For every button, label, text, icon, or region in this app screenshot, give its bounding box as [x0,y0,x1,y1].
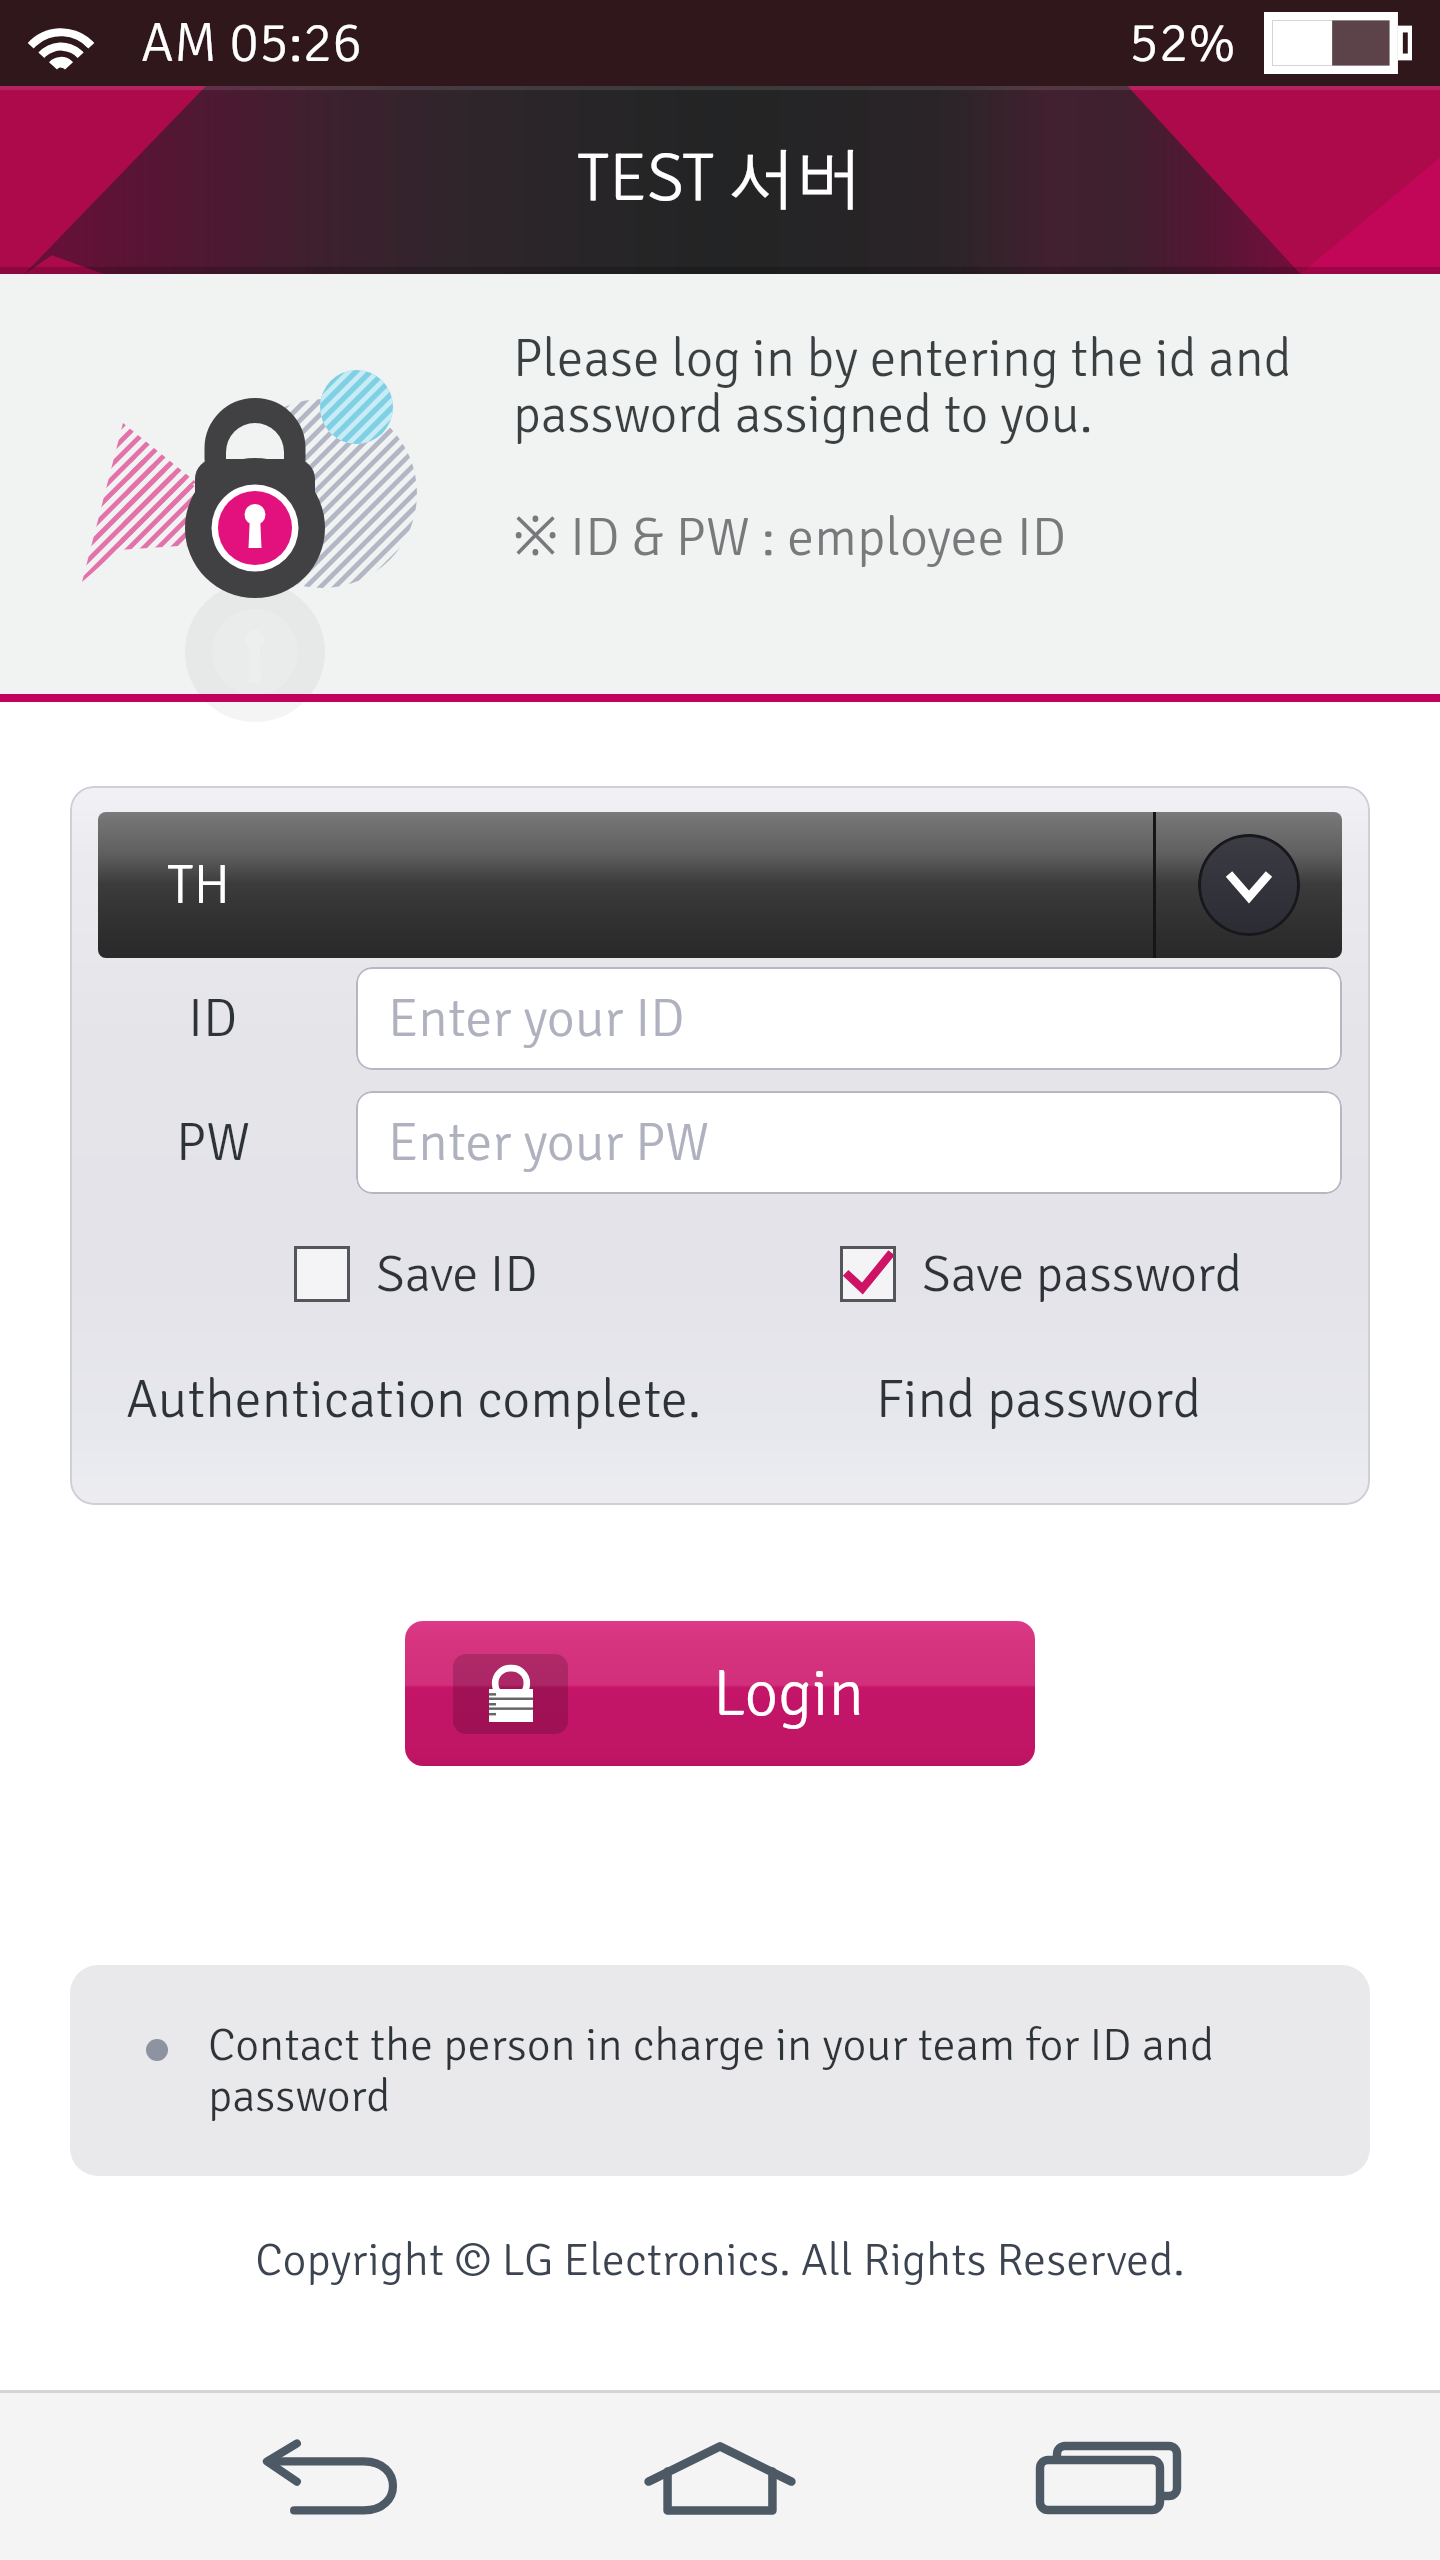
staticText: Login [713,1654,864,1734]
button[interactable]: Login [405,1621,1035,1766]
staticText: TH [167,851,231,919]
staticText: Enter your ID [388,985,685,1052]
button[interactable]: Find password [876,1366,1202,1433]
staticText: ※ ID & PW : employee ID [513,497,1067,571]
button[interactable]: Enter your ID [356,967,1342,1070]
staticText: Copyright © LG Electronics. All Rights R… [0,2232,1440,2289]
button[interactable]: Enter your PW [356,1091,1342,1194]
staticText: PW [176,1109,250,1176]
button[interactable]: Back [0,2393,480,2560]
staticText: Contact the person in charge in your tea… [208,2017,1310,2124]
button[interactable]: Home [480,2393,960,2560]
staticText: TEST 서버 [577,135,864,219]
button[interactable]: TH [98,812,1342,958]
staticText: Save password [922,1242,1243,1306]
button[interactable]: Save ID [294,1242,538,1306]
button[interactable]: Recent apps [960,2393,1440,2560]
staticText: Enter your PW [388,1109,710,1176]
staticText: Save ID [376,1242,538,1306]
staticText: 52% [1129,9,1236,77]
staticText: AM 05:26 [141,9,362,77]
staticText: Please log in by entering the id and pas… [513,326,1343,447]
staticText: ID [188,985,238,1052]
button[interactable]: Authentication complete. [126,1366,702,1433]
button[interactable]: Save password [840,1242,1243,1306]
